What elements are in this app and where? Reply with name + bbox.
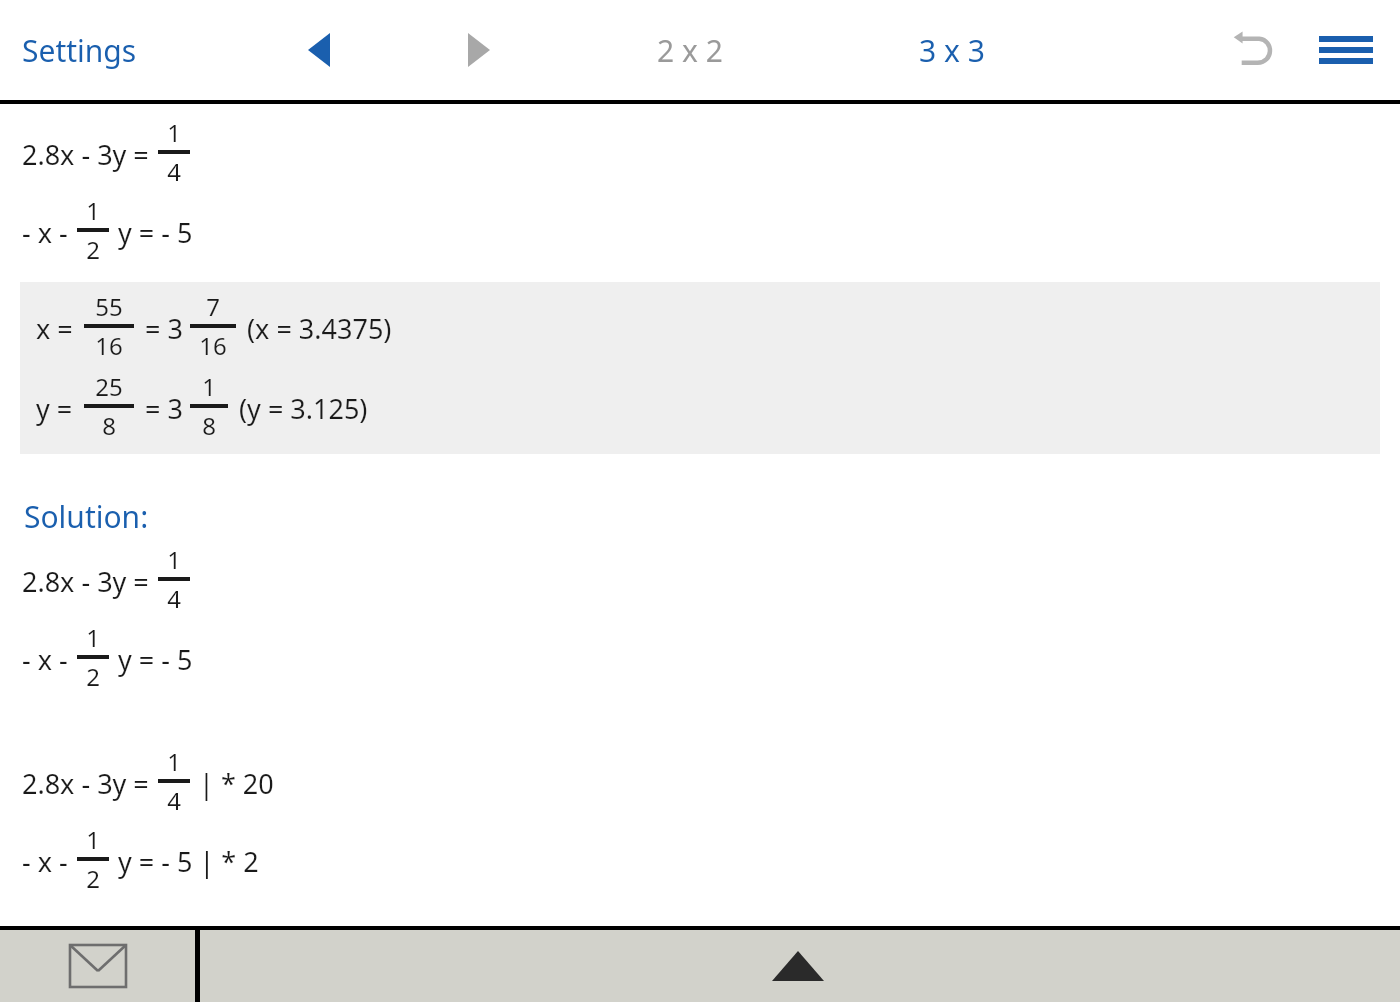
staticText: Settings <box>22 30 137 71</box>
staticText: 1 <box>202 370 216 403</box>
button[interactable]: Expand <box>200 930 1400 1002</box>
staticText: 1 <box>167 116 181 149</box>
button[interactable]: Mail <box>0 930 195 1002</box>
staticText: = 3 <box>145 390 183 427</box>
staticText: 2.8x - 3y = <box>22 765 149 802</box>
staticText: x = <box>36 310 73 347</box>
staticText: - x - <box>22 843 68 880</box>
staticText: 1 <box>167 745 181 778</box>
staticText: 1 <box>86 194 100 227</box>
staticText: 3 x 3 <box>919 30 985 71</box>
staticText: 16 <box>199 329 227 362</box>
staticText: 2 x 2 <box>657 30 723 71</box>
button[interactable]: Undo <box>1218 14 1290 86</box>
staticText: Solution: <box>24 496 149 537</box>
staticText: 2.8x - 3y = <box>22 136 149 173</box>
staticText: y = - 5 <box>118 641 193 678</box>
staticText: - x - <box>22 214 68 251</box>
staticText: 1 <box>86 621 100 654</box>
button[interactable]: Previous step <box>287 18 351 82</box>
staticText: = 3 <box>145 310 183 347</box>
button[interactable]: 3 x 3 <box>911 22 993 79</box>
staticText: 4 <box>167 784 181 817</box>
staticText: y = <box>36 390 73 427</box>
staticText: 1 <box>167 543 181 576</box>
staticText: y = - 5 | * 2 <box>118 843 259 880</box>
staticText: 55 <box>95 290 123 323</box>
staticText: 2 <box>86 233 100 266</box>
staticText: 8 <box>102 409 116 442</box>
staticText: 2 <box>86 862 100 895</box>
staticText: y = - 5 <box>118 214 193 251</box>
staticText: - x - <box>22 641 68 678</box>
staticText: (x = 3.4375) <box>247 310 392 347</box>
staticText: 8 <box>202 409 216 442</box>
staticText: 4 <box>167 155 181 188</box>
staticText: 25 <box>95 370 123 403</box>
staticText: 7 <box>206 290 220 323</box>
staticText: (y = 3.125) <box>239 390 368 427</box>
button[interactable]: 2 x 2 <box>649 22 731 79</box>
button[interactable]: Settings <box>22 30 137 71</box>
staticText: 2 <box>86 660 100 693</box>
button[interactable]: Menu <box>1306 10 1386 90</box>
staticText: | * 20 <box>199 765 274 802</box>
staticText: 16 <box>95 329 123 362</box>
button[interactable]: Next step <box>447 18 511 82</box>
staticText: 4 <box>167 582 181 615</box>
staticText: 1 <box>86 823 100 856</box>
staticText: 2.8x - 3y = <box>22 563 149 600</box>
